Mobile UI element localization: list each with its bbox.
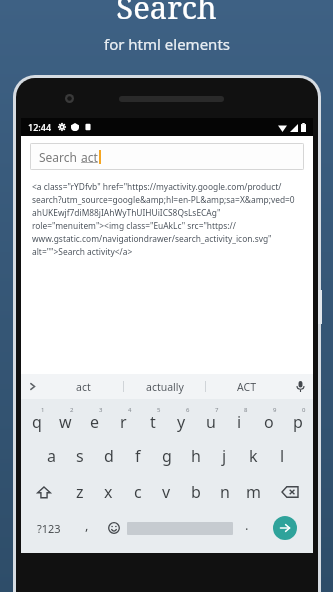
button[interactable]: 5	[138, 402, 167, 438]
button[interactable]: Shift	[22, 474, 65, 510]
staticText: z	[76, 481, 84, 503]
button[interactable]: ACT	[206, 374, 287, 399]
staticText: m	[246, 481, 261, 503]
button[interactable]: f	[123, 438, 152, 474]
staticText: <a class="rYDfvb" href="https://myactivi…	[32, 181, 299, 258]
button[interactable]: 4	[109, 402, 138, 438]
staticText: Search	[39, 149, 81, 165]
staticText: 7	[215, 406, 219, 414]
button[interactable]: 2	[51, 402, 80, 438]
button[interactable]: 7	[196, 402, 225, 438]
button[interactable]: Search	[30, 143, 304, 170]
staticText: g	[162, 445, 172, 467]
button[interactable]: 3	[80, 402, 109, 438]
staticText: actually	[146, 380, 184, 394]
button[interactable]: .	[233, 510, 260, 546]
button[interactable]: ,	[73, 510, 100, 546]
button[interactable]: l	[268, 438, 297, 474]
button[interactable]: b	[181, 474, 210, 510]
staticText: 4	[128, 406, 132, 414]
staticText: Search	[116, 0, 217, 28]
button[interactable]: Enter	[260, 510, 310, 546]
staticText: l	[280, 445, 285, 467]
button[interactable]: Backspace	[268, 474, 312, 510]
staticText: x	[104, 481, 113, 503]
staticText: ,	[85, 516, 89, 534]
button[interactable]: Emoji	[100, 510, 127, 546]
staticText: act	[81, 149, 98, 165]
button[interactable]: g	[152, 438, 181, 474]
staticText: e	[90, 411, 100, 433]
staticText: b	[191, 481, 201, 503]
button[interactable]: a	[37, 438, 65, 474]
button[interactable]: Voice input	[287, 374, 313, 399]
staticText: 8	[244, 406, 248, 414]
staticText: s	[76, 445, 84, 467]
button[interactable]: n	[210, 474, 239, 510]
button[interactable]: m	[239, 474, 268, 510]
staticText: 6	[186, 406, 190, 414]
staticText: y	[177, 411, 186, 433]
button[interactable]: 1	[22, 402, 51, 438]
staticText: ACT	[237, 380, 256, 394]
staticText: n	[220, 481, 230, 503]
staticText: t	[150, 411, 156, 433]
button[interactable]: 0	[283, 402, 312, 438]
staticText: 0	[302, 406, 306, 414]
staticText: f	[135, 445, 141, 467]
staticText: u	[206, 411, 216, 433]
button[interactable]: actually	[124, 374, 205, 399]
staticText: a	[47, 445, 56, 467]
staticText: c	[134, 481, 142, 503]
staticText: 12:44	[28, 121, 52, 133]
button[interactable]: act	[43, 374, 123, 399]
staticText: q	[32, 411, 42, 433]
button[interactable]: 9	[254, 402, 283, 438]
button[interactable]: ?123	[24, 510, 73, 546]
button[interactable]: Expand suggestions	[21, 374, 43, 399]
button[interactable]: 8	[225, 402, 254, 438]
staticText: .	[245, 516, 249, 534]
staticText: 2	[70, 406, 74, 414]
staticText: act	[76, 380, 91, 394]
staticText: i	[237, 411, 242, 433]
staticText: 9	[273, 406, 277, 414]
staticText: o	[264, 411, 274, 433]
button[interactable]: c	[123, 474, 152, 510]
button[interactable]: v	[152, 474, 181, 510]
button[interactable]: 6	[167, 402, 196, 438]
staticText: d	[104, 445, 114, 467]
button[interactable]: j	[210, 438, 239, 474]
staticText: for html elements	[104, 34, 230, 54]
staticText: 1	[41, 406, 45, 414]
button[interactable]: x	[94, 474, 123, 510]
button[interactable]: k	[239, 438, 268, 474]
staticText: k	[249, 445, 258, 467]
button[interactable]: s	[65, 438, 94, 474]
staticText: 3	[99, 406, 103, 414]
staticText: v	[162, 481, 171, 503]
staticText: p	[293, 411, 303, 433]
button[interactable]	[127, 510, 233, 546]
staticText: w	[59, 411, 72, 433]
staticText: ?123	[37, 521, 61, 536]
button[interactable]: h	[181, 438, 210, 474]
button[interactable]: z	[65, 474, 94, 510]
staticText: 5	[157, 406, 161, 414]
staticText: j	[222, 445, 227, 467]
staticText: h	[191, 445, 201, 467]
button[interactable]: d	[94, 438, 123, 474]
staticText: r	[120, 411, 127, 433]
